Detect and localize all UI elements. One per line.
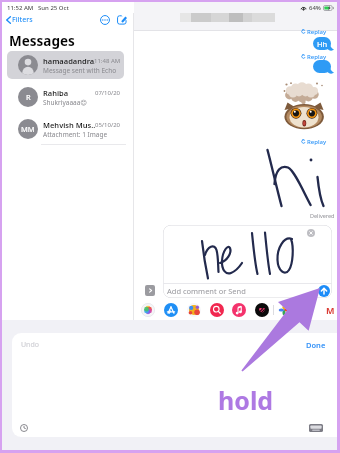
staticText: R (26, 92, 31, 102)
button[interactable]: More options (99, 14, 111, 26)
button[interactable]: hamaadandra.... (7, 51, 124, 79)
staticText: M (326, 304, 335, 316)
staticText: hold (219, 383, 275, 417)
button[interactable]: iMessage app (323, 303, 337, 317)
staticText: Sun 25 Oct (38, 4, 69, 12)
staticText: hamaadandra.... (43, 56, 95, 65)
staticText: Filters (12, 15, 33, 24)
staticText: Replay (307, 138, 327, 145)
staticText: 64% (309, 4, 321, 12)
staticText: Add comment or Send (167, 286, 246, 296)
staticText: 05/10/20 (95, 121, 121, 129)
button[interactable]: Send (318, 285, 330, 297)
staticText: MM (21, 124, 35, 134)
staticText: hold (218, 383, 274, 417)
staticText: hold (219, 382, 275, 416)
staticText: hold (217, 383, 273, 417)
button[interactable]: iMessage app (141, 303, 155, 317)
staticText: hold (217, 382, 273, 416)
button[interactable]: iMessage app (255, 303, 269, 317)
staticText: Rahiba (43, 88, 69, 97)
staticText: hold (218, 384, 274, 418)
button[interactable]: New message (116, 14, 128, 26)
staticText: Message sent with Echo (43, 66, 117, 75)
staticText: Messages (9, 32, 75, 50)
button[interactable]: Filters (5, 13, 34, 26)
button[interactable]: Undo (21, 340, 39, 350)
button[interactable]: iMessage app (187, 303, 201, 317)
staticText: hold (219, 384, 275, 418)
button[interactable]: R (7, 83, 124, 111)
staticText: Mehvish Mus... (43, 120, 95, 129)
button[interactable]: iMessage app (232, 303, 246, 317)
button[interactable]: iMessage app (164, 303, 178, 317)
staticText: 07/10/20 (95, 89, 121, 97)
button[interactable]: Recents (20, 424, 28, 432)
staticText: 11:52 AM (7, 4, 34, 12)
button[interactable]: Hide keyboard (309, 424, 323, 432)
button[interactable]: iMessage app (277, 303, 291, 317)
button[interactable]: iMessage app (210, 303, 224, 317)
staticText: hold (218, 382, 274, 416)
staticText: Attachment: 1 Image (43, 130, 108, 139)
staticText: 11:48 AM (94, 57, 121, 65)
button[interactable]: Done (306, 340, 326, 350)
button[interactable]: Show apps (145, 285, 155, 296)
staticText: Hh (317, 39, 328, 49)
staticText: Shukriyaaaa😊 (43, 98, 88, 107)
staticText: Delivered (310, 212, 335, 219)
staticText: hold (217, 384, 273, 418)
button[interactable]: MM (7, 115, 124, 143)
staticText: Replay (307, 28, 327, 35)
staticText: Replay (307, 53, 327, 60)
button[interactable]: Delete drawing (307, 229, 315, 237)
